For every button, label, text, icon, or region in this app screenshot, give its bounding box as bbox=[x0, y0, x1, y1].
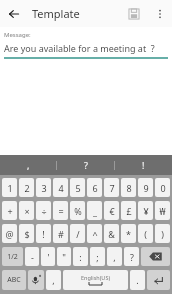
button[interactable]: " bbox=[57, 247, 71, 266]
staticText: 4 bbox=[58, 182, 64, 194]
button[interactable]: # bbox=[53, 224, 68, 243]
staticText: ? bbox=[130, 251, 134, 263]
button[interactable]: . bbox=[130, 270, 145, 290]
button[interactable]: € bbox=[104, 201, 119, 220]
button[interactable]: ? bbox=[124, 247, 139, 266]
button[interactable]: ; bbox=[90, 247, 105, 266]
staticText: - bbox=[31, 251, 34, 263]
button[interactable]: Backspace bbox=[141, 247, 170, 266]
staticText: " bbox=[62, 251, 66, 263]
staticText: ¥ bbox=[143, 205, 149, 217]
staticText: 3 bbox=[41, 182, 47, 194]
staticText: * bbox=[126, 228, 131, 240]
staticText: ; bbox=[96, 251, 99, 263]
staticText: English(US) bbox=[81, 274, 111, 281]
button[interactable]: 6 bbox=[87, 178, 102, 197]
button[interactable]: 3 bbox=[36, 178, 51, 197]
staticText: ^ bbox=[92, 228, 98, 240]
button[interactable]: ₩ bbox=[155, 201, 170, 220]
button[interactable]: : bbox=[73, 247, 88, 266]
button[interactable]: 1 bbox=[2, 178, 17, 197]
staticText: € bbox=[109, 205, 115, 217]
button[interactable]: 1/2 bbox=[2, 247, 23, 266]
staticText: + bbox=[7, 205, 13, 217]
staticText: 1/2 bbox=[7, 252, 18, 262]
button[interactable]: $ bbox=[19, 224, 34, 243]
button[interactable]: ) bbox=[155, 224, 170, 243]
staticText: ! bbox=[142, 159, 145, 171]
button[interactable]: More options bbox=[147, 1, 172, 26]
button[interactable]: ! bbox=[115, 155, 172, 175]
staticText: 9 bbox=[143, 182, 149, 194]
staticText: , bbox=[113, 251, 116, 263]
staticText: £ bbox=[126, 205, 132, 217]
staticText: ( bbox=[144, 228, 147, 240]
button[interactable]: 2 bbox=[19, 178, 34, 197]
button[interactable]: ABC bbox=[2, 270, 26, 290]
button[interactable]: ^ bbox=[87, 224, 102, 243]
button[interactable]: & bbox=[104, 224, 119, 243]
button[interactable]: , bbox=[0, 155, 56, 175]
button[interactable]: _ bbox=[87, 201, 102, 220]
button[interactable]: @ bbox=[2, 224, 17, 243]
button[interactable]: Enter bbox=[147, 270, 170, 290]
staticText: ÷ bbox=[41, 205, 47, 217]
staticText: . bbox=[136, 274, 139, 286]
staticText: @ bbox=[5, 228, 14, 240]
staticText: & bbox=[108, 228, 115, 240]
button[interactable]: / bbox=[70, 224, 85, 243]
button[interactable]: ! bbox=[36, 224, 51, 243]
button[interactable]: ' bbox=[41, 247, 55, 266]
staticText: 2 bbox=[24, 182, 30, 194]
button[interactable]: * bbox=[121, 224, 136, 243]
button[interactable]: 8 bbox=[121, 178, 136, 197]
button[interactable]: £ bbox=[121, 201, 136, 220]
staticText: ) bbox=[161, 228, 164, 240]
staticText: ? bbox=[84, 159, 88, 171]
staticText: 0 bbox=[160, 182, 166, 194]
staticText: Are you available for a meeting at ? bbox=[4, 42, 155, 54]
button[interactable]: , bbox=[46, 270, 61, 290]
button[interactable]: + bbox=[2, 201, 17, 220]
staticText: × bbox=[24, 205, 30, 217]
button[interactable]: % bbox=[70, 201, 85, 220]
button[interactable]: Voice input bbox=[28, 270, 44, 290]
staticText: 1 bbox=[7, 182, 13, 194]
staticText: Message: bbox=[4, 31, 31, 39]
button[interactable]: Back bbox=[0, 0, 27, 27]
staticText: Template bbox=[32, 6, 80, 21]
button[interactable]: - bbox=[25, 247, 39, 266]
button[interactable]: , bbox=[107, 247, 122, 266]
staticText: 8 bbox=[126, 182, 132, 194]
button[interactable]: ¥ bbox=[138, 201, 153, 220]
staticText: _ bbox=[93, 205, 97, 217]
staticText: / bbox=[76, 228, 80, 240]
button[interactable]: Save bbox=[120, 0, 147, 27]
staticText: % bbox=[74, 205, 82, 217]
button[interactable]: English(US) bbox=[63, 270, 128, 290]
button[interactable]: × bbox=[19, 201, 34, 220]
staticText: = bbox=[58, 205, 64, 217]
button[interactable]: 9 bbox=[138, 178, 153, 197]
staticText: 6 bbox=[92, 182, 98, 194]
button[interactable]: 7 bbox=[104, 178, 119, 197]
staticText: # bbox=[58, 228, 64, 240]
button[interactable]: ( bbox=[138, 224, 153, 243]
staticText: ' bbox=[47, 251, 50, 263]
staticText: 7 bbox=[109, 182, 115, 194]
button[interactable]: ÷ bbox=[36, 201, 51, 220]
staticText: 5 bbox=[75, 182, 81, 194]
button[interactable]: 4 bbox=[53, 178, 68, 197]
staticText: , bbox=[27, 159, 30, 171]
staticText: $ bbox=[24, 228, 30, 240]
button[interactable]: 5 bbox=[70, 178, 85, 197]
button[interactable]: = bbox=[53, 201, 68, 220]
staticText: ! bbox=[42, 228, 45, 240]
staticText: ₩ bbox=[159, 205, 166, 217]
button[interactable]: 0 bbox=[155, 178, 170, 197]
staticText: ABC bbox=[7, 275, 21, 285]
staticText: , bbox=[52, 274, 55, 286]
button[interactable]: ? bbox=[57, 155, 114, 175]
staticText: : bbox=[79, 251, 82, 263]
